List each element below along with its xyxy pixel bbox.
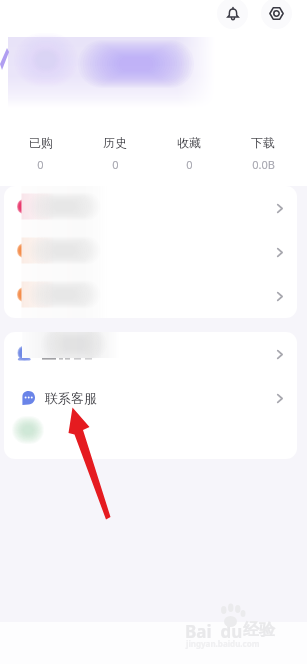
button[interactable]: Settings <box>261 0 292 29</box>
button[interactable] <box>4 230 297 274</box>
button[interactable]: 历史 <box>78 135 152 175</box>
staticText: 经验 <box>243 620 275 640</box>
staticText: 联系客服 <box>45 390 97 406</box>
button[interactable]: 已购 <box>3 135 78 175</box>
button[interactable] <box>4 332 297 376</box>
staticText: 0 <box>186 157 193 172</box>
button[interactable]: Notifications <box>217 0 248 29</box>
staticText: 历史 <box>103 135 127 150</box>
button[interactable]: 收藏 <box>152 135 226 175</box>
staticText: 下载 <box>251 135 275 150</box>
staticText: 已购 <box>29 135 53 150</box>
button[interactable]: 下载 <box>226 135 300 175</box>
button[interactable]: 联系客服 <box>4 376 297 420</box>
button[interactable] <box>4 274 297 318</box>
button[interactable] <box>4 186 297 230</box>
staticText: Bai du <box>185 620 243 643</box>
staticText: 0 <box>37 157 44 172</box>
staticText: jingyan.baidu.com <box>186 638 260 649</box>
staticText: 收藏 <box>177 135 201 150</box>
staticText: 0 <box>112 157 119 172</box>
staticText: 0.0B <box>252 157 275 172</box>
